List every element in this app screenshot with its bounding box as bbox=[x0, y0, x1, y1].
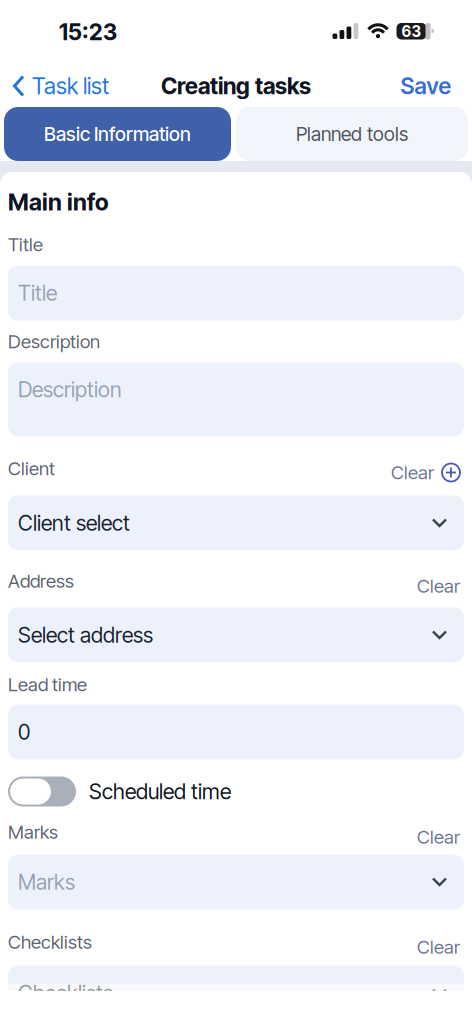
button[interactable]: Add bbox=[442, 463, 460, 481]
staticText: Save bbox=[400, 72, 451, 100]
staticText: Main info bbox=[8, 188, 109, 216]
staticText: Marks bbox=[8, 821, 58, 843]
button[interactable]: Select address bbox=[8, 607, 464, 662]
staticText: 15:23 bbox=[59, 18, 117, 46]
button[interactable]: Client select bbox=[8, 495, 464, 550]
staticText: Address bbox=[8, 570, 74, 592]
button[interactable]: Checklists bbox=[8, 965, 464, 1020]
staticText: Marks bbox=[18, 869, 75, 895]
button[interactable]: Title bbox=[8, 265, 464, 320]
button[interactable]: Clear bbox=[391, 461, 434, 484]
staticText: Lead time bbox=[8, 673, 87, 696]
staticText: Client bbox=[8, 457, 55, 480]
staticText: Client select bbox=[18, 510, 130, 536]
button[interactable]: Clear bbox=[417, 826, 460, 848]
button[interactable]: Clear bbox=[417, 936, 460, 958]
staticText: Description bbox=[8, 330, 100, 353]
staticText: 63 bbox=[401, 22, 421, 41]
staticText: Scheduled time bbox=[89, 779, 231, 804]
button[interactable]: Marks bbox=[8, 854, 464, 909]
staticText: Clear bbox=[391, 461, 434, 484]
staticText: Task list bbox=[32, 72, 109, 100]
staticText: Clear bbox=[417, 826, 460, 848]
button[interactable]: Description bbox=[8, 362, 464, 436]
staticText: Clear bbox=[417, 936, 460, 958]
button[interactable]: Task list bbox=[13, 72, 109, 100]
staticText: Description bbox=[18, 376, 122, 402]
staticText: Title bbox=[8, 233, 43, 256]
staticText: Title bbox=[18, 280, 57, 306]
button[interactable]: Basic Information bbox=[4, 107, 231, 161]
staticText: Creating tasks bbox=[161, 72, 311, 100]
button[interactable]: 0 bbox=[8, 704, 464, 759]
staticText: Basic Information bbox=[44, 122, 191, 146]
staticText: Clear bbox=[417, 575, 460, 597]
button[interactable]: Save bbox=[400, 72, 451, 100]
staticText: Checklists bbox=[18, 980, 113, 1006]
staticText: 0 bbox=[18, 719, 30, 745]
button[interactable]: Planned tools bbox=[236, 107, 468, 161]
button[interactable]: Clear bbox=[417, 575, 460, 597]
staticText: Select address bbox=[18, 622, 153, 648]
staticText: Planned tools bbox=[296, 122, 408, 146]
button[interactable]: Scheduled time bbox=[8, 776, 76, 806]
staticText: Checklists bbox=[8, 931, 92, 953]
